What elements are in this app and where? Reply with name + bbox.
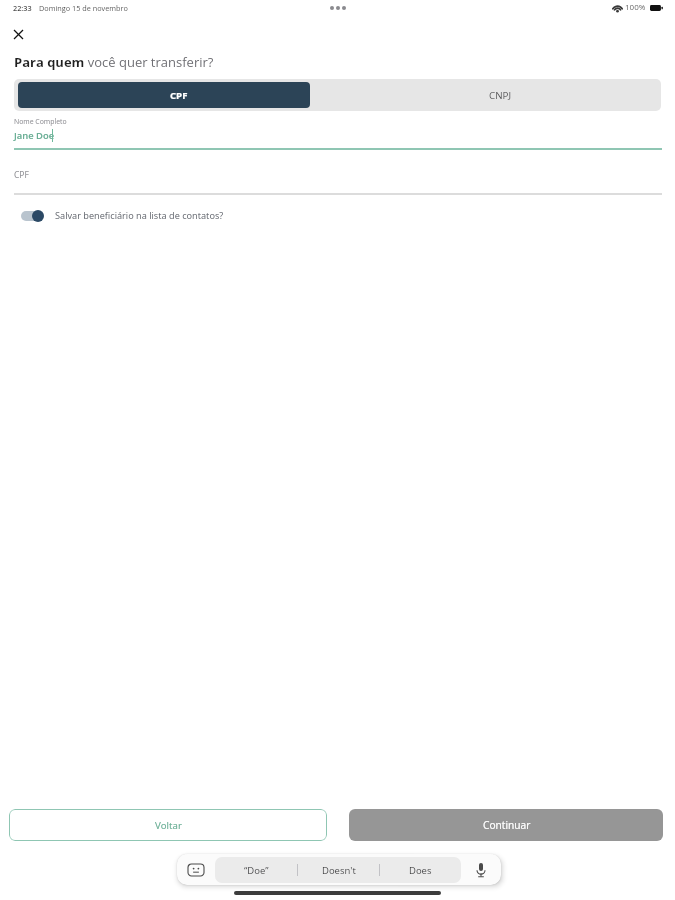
- staticText: CNPJ: [489, 89, 512, 102]
- button[interactable]: Dictation: [461, 854, 501, 885]
- staticText: Continuar: [483, 818, 531, 832]
- staticText: Doesn't: [322, 864, 356, 877]
- staticText: Jane Doe: [14, 129, 55, 142]
- button[interactable]: Continuar: [349, 809, 663, 841]
- staticText: Salvar beneficiário na lista de contatos…: [55, 209, 224, 222]
- button[interactable]: Does: [380, 857, 461, 883]
- button[interactable]: Doesn't: [298, 857, 379, 883]
- button[interactable]: Close: [7, 23, 30, 46]
- button[interactable]: CPF: [14, 79, 337, 111]
- staticText: 100%: [625, 1, 646, 12]
- button[interactable]: Salvar beneficiário na lista de contatos…: [20, 207, 224, 223]
- staticText: CPF: [14, 169, 29, 181]
- button[interactable]: Emoji keyboard: [177, 854, 215, 885]
- staticText: Does: [409, 864, 432, 877]
- staticText: Domingo 15 de novembro: [39, 3, 128, 13]
- staticText: Voltar: [155, 819, 182, 832]
- staticText: Para quem você quer transferir?: [14, 53, 214, 71]
- button[interactable]: CNPJ: [337, 79, 661, 111]
- staticText: “Doe”: [244, 864, 269, 877]
- staticText: CPF: [170, 89, 188, 102]
- button[interactable]: “Doe”: [215, 857, 297, 883]
- staticText: 22:33: [13, 3, 32, 13]
- button[interactable]: Voltar: [9, 809, 327, 841]
- staticText: Nome Completo: [14, 117, 67, 126]
